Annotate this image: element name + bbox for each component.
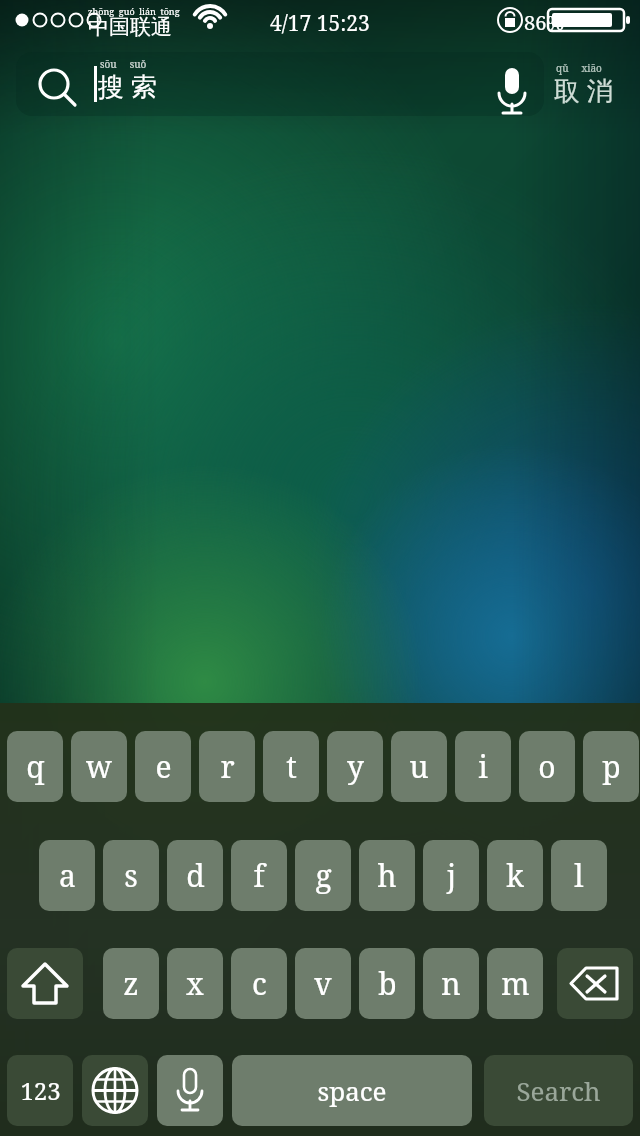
button[interactable]: w [71,731,127,802]
button[interactable]: e [135,731,191,802]
button[interactable]: q [7,731,63,802]
button[interactable]: j [423,840,479,911]
staticText: l [574,855,584,896]
button[interactable]: k [487,840,543,911]
staticText: c [252,963,267,1004]
staticText: 取 消 [554,72,613,108]
button[interactable]: o [519,731,575,802]
staticText: 86% [524,9,565,36]
staticText: z [123,963,139,1004]
staticText: p [602,746,621,787]
staticText: u [409,746,429,787]
staticText: o [538,746,556,787]
button[interactable]: Dictate [157,1055,223,1126]
button[interactable]: l [551,840,607,911]
button[interactable]: qǔ xiāo [552,52,634,116]
staticText: h [377,855,397,896]
staticText: sōu suǒ [100,57,147,71]
staticText: space [317,1073,387,1108]
staticText: 中国联通 [88,14,172,40]
staticText: s [124,855,138,896]
button[interactable]: h [359,840,415,911]
staticText: i [478,746,488,787]
staticText: 123 [20,1074,61,1107]
button[interactable]: Change keyboard [82,1055,148,1126]
staticText: zhōng guó lián tōng [88,5,180,17]
staticText: m [501,963,530,1004]
button[interactable]: r [199,731,255,802]
button[interactable]: d [167,840,223,911]
button[interactable]: p [583,731,639,802]
staticText: Search [516,1073,601,1108]
button[interactable]: a [39,840,95,911]
staticText: f [253,855,265,896]
staticText: t [286,746,297,787]
button[interactable]: Shift [7,948,83,1019]
button[interactable]: v [295,948,351,1019]
button[interactable]: g [295,840,351,911]
button[interactable]: b [359,948,415,1019]
button[interactable]: u [391,731,447,802]
button[interactable]: t [263,731,319,802]
button[interactable]: space [232,1055,472,1126]
button[interactable]: x [167,948,223,1019]
button[interactable]: m [487,948,543,1019]
staticText: y [347,746,364,787]
staticText: g [315,855,332,896]
staticText: r [220,746,235,787]
button[interactable]: c [231,948,287,1019]
button[interactable] [16,52,544,116]
staticText: v [314,963,332,1004]
button[interactable]: Voice search [486,58,538,110]
staticText: b [378,963,397,1004]
button[interactable]: Search [484,1055,633,1126]
staticText: x [186,963,204,1004]
button[interactable]: Backspace [557,948,633,1019]
staticText: n [441,963,461,1004]
staticText: j [447,855,456,896]
button[interactable]: f [231,840,287,911]
staticText: e [155,746,172,787]
staticText: a [59,855,76,896]
staticText: qǔ xiāo [556,61,602,75]
button[interactable]: i [455,731,511,802]
staticText: k [506,855,524,896]
button[interactable]: z [103,948,159,1019]
staticText: w [86,746,112,787]
staticText: 搜 索 [98,68,157,104]
staticText: q [26,746,45,787]
button[interactable]: 123 [7,1055,73,1126]
staticText: 4/17 15:23 [270,9,370,38]
button[interactable]: s [103,840,159,911]
button[interactable]: n [423,948,479,1019]
staticText: d [186,855,205,896]
button[interactable]: y [327,731,383,802]
